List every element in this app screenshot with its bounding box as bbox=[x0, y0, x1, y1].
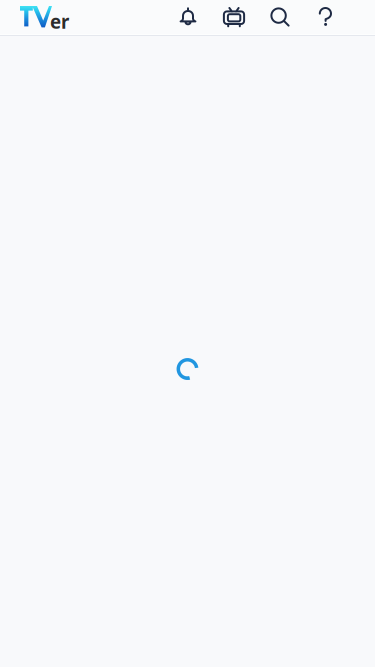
button[interactable]: Search bbox=[257, 0, 303, 34]
button[interactable]: Help bbox=[303, 0, 349, 34]
button[interactable]: Live TV bbox=[211, 0, 257, 34]
button[interactable]: TVer home bbox=[16, 0, 74, 34]
staticText: er bbox=[50, 9, 69, 34]
button[interactable]: Notifications bbox=[165, 0, 211, 34]
